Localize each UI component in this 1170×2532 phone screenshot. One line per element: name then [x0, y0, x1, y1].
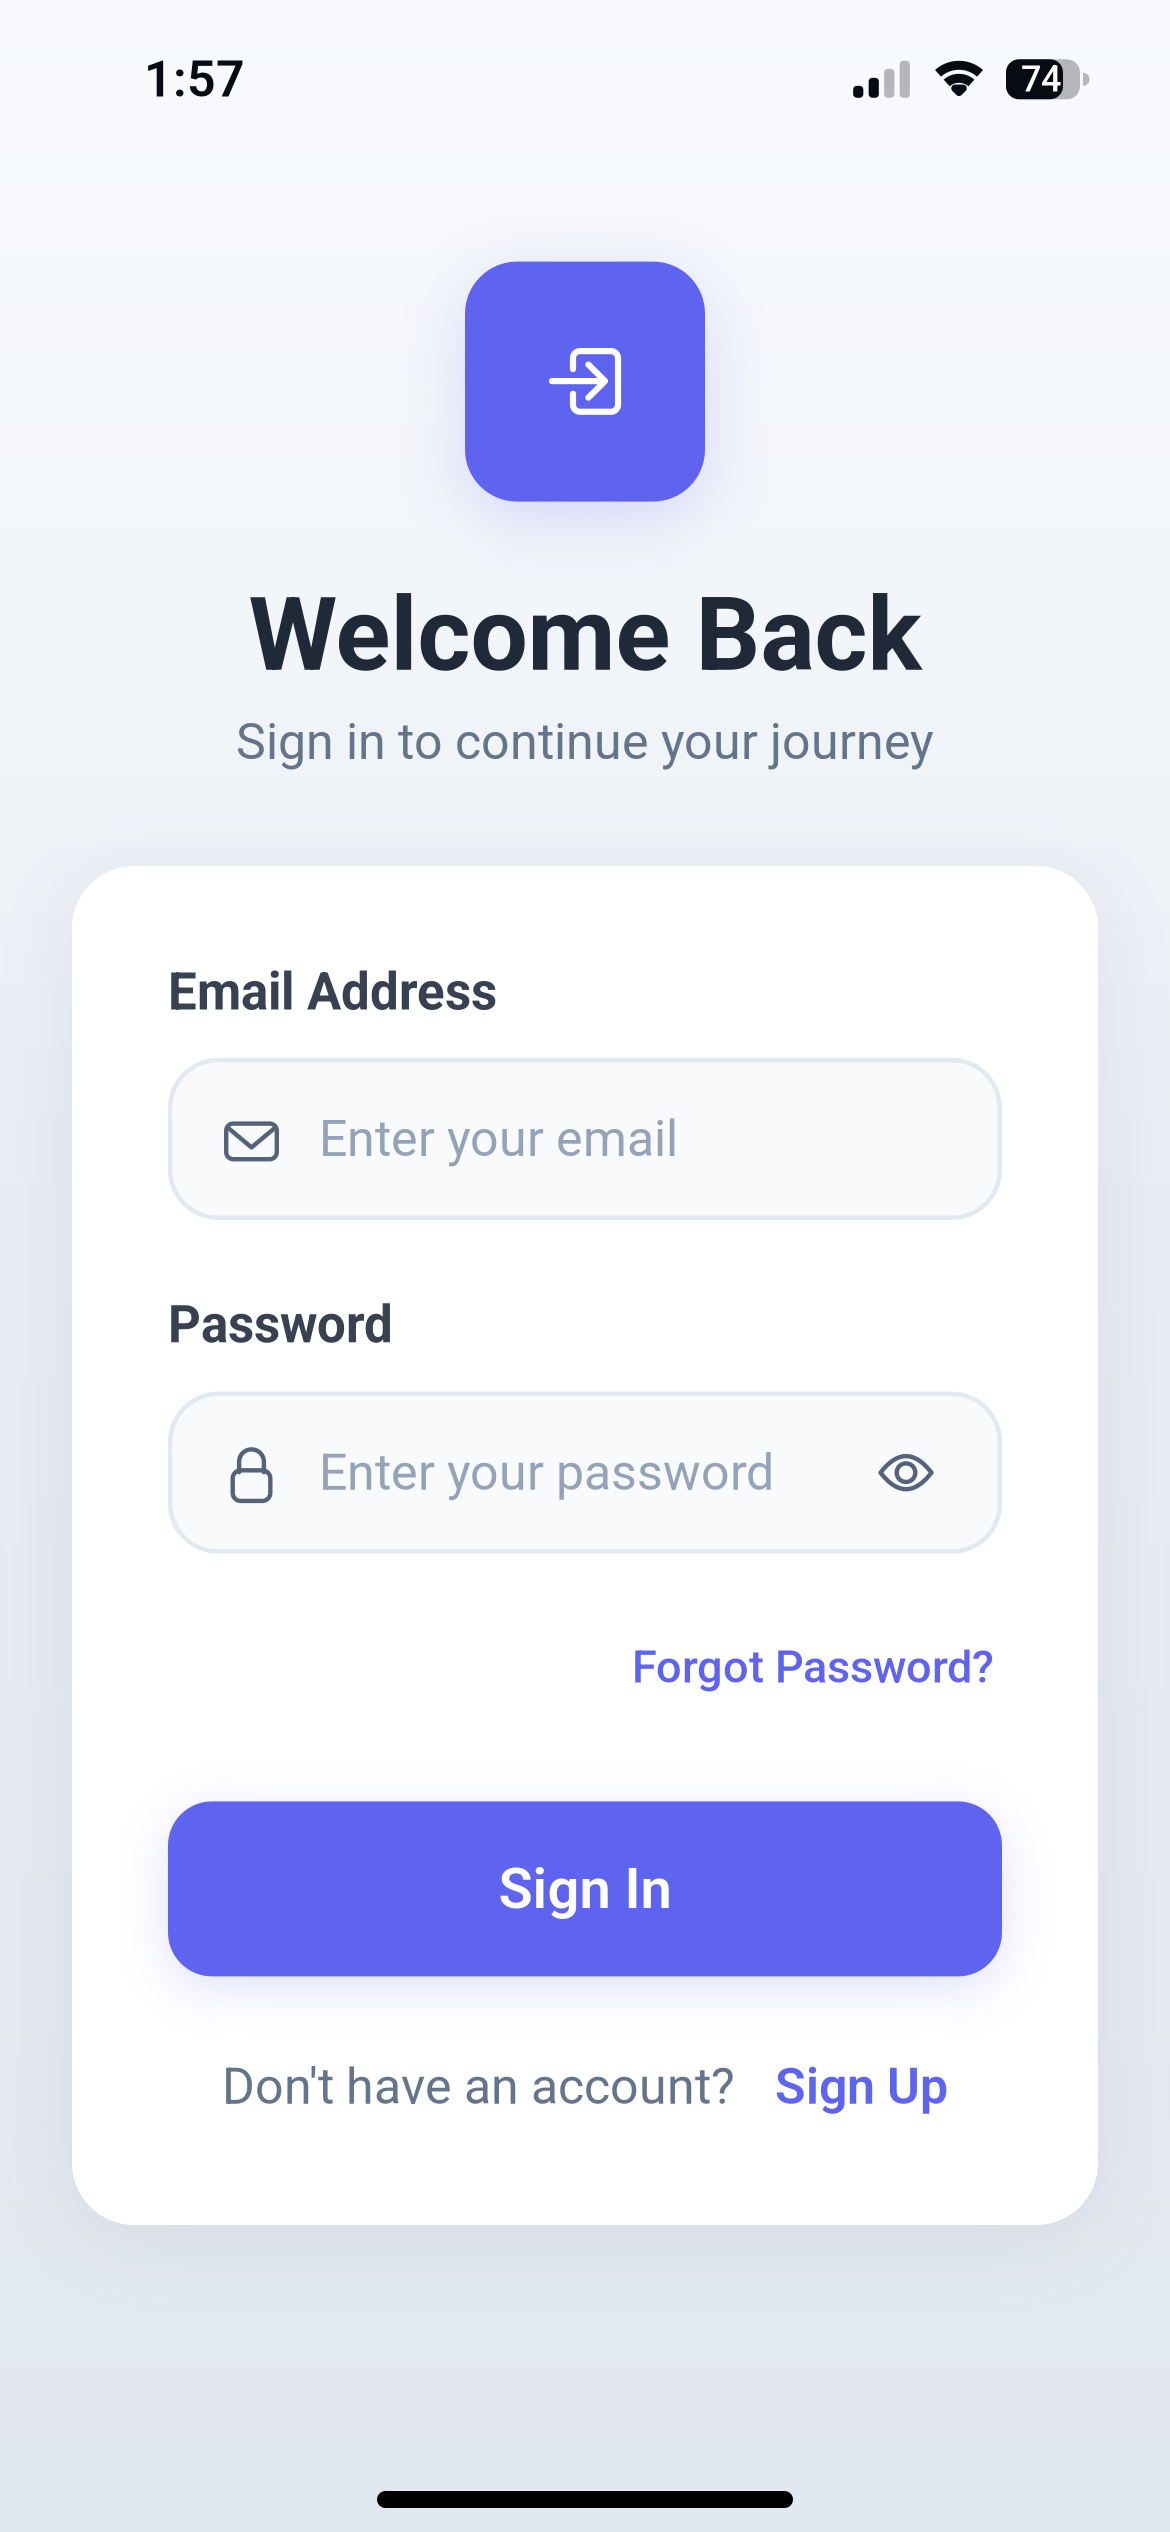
button[interactable]: Show password — [861, 1428, 951, 1518]
staticText: Sign Up — [775, 2057, 948, 2116]
staticText: Password — [168, 1295, 393, 1355]
staticText: Email Address — [168, 962, 497, 1022]
button[interactable]: Sign In — [168, 1801, 1002, 1976]
staticText: Enter your email — [319, 1110, 678, 1168]
staticText: 74 — [1021, 58, 1061, 100]
staticText: 1:57 — [144, 50, 245, 109]
staticText: Sign in to continue your journey — [236, 712, 934, 771]
staticText: Don't have an account? — [222, 2057, 735, 2116]
staticText: Welcome Back — [248, 576, 921, 694]
staticText: Sign In — [498, 1856, 671, 1922]
staticText: Forgot Password? — [632, 1641, 994, 1693]
button[interactable]: Forgot Password? — [168, 1641, 1002, 1693]
button[interactable]: Sign Up — [775, 2057, 948, 2116]
staticText: Enter your password — [319, 1443, 774, 1502]
